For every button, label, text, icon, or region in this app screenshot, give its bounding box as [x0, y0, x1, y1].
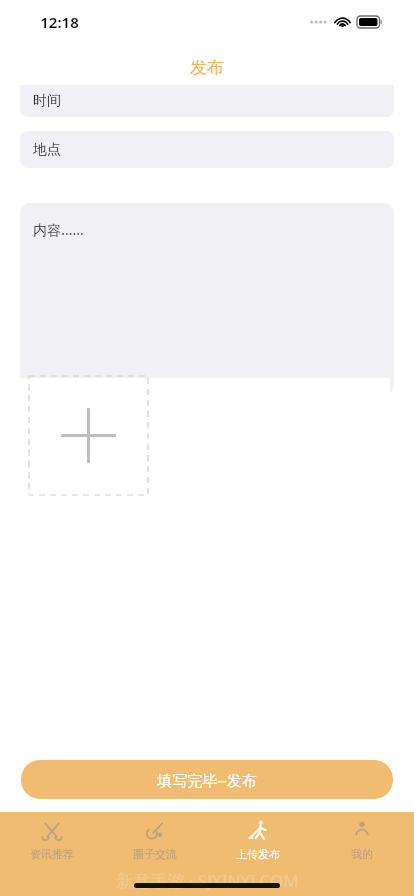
button[interactable]: 地点: [20, 131, 394, 168]
staticText: 圈子交流: [133, 847, 177, 861]
button[interactable]: 资讯推荐: [0, 812, 103, 868]
staticText: 上传发布: [236, 847, 280, 861]
button[interactable]: 圈子交流: [103, 812, 206, 868]
staticText: 我的: [351, 847, 373, 861]
button[interactable]: 上传发布: [206, 812, 310, 868]
staticText: 地点: [33, 141, 61, 159]
staticText: 发布: [190, 57, 224, 78]
button[interactable]: Add photo: [29, 376, 148, 495]
staticText: 内容......: [33, 220, 84, 239]
staticText: 时间: [33, 92, 61, 110]
staticText: 填写完毕--发布: [157, 770, 257, 790]
staticText: 12:18: [40, 12, 79, 32]
staticText: 新意手游 · SJXINYI.COM: [116, 869, 299, 892]
button[interactable]: 我的: [310, 812, 414, 868]
button[interactable]: 时间: [20, 85, 394, 117]
button[interactable]: 填写完毕--发布: [21, 760, 393, 799]
staticText: 资讯推荐: [30, 847, 74, 861]
button[interactable]: 内容......: [20, 203, 394, 395]
